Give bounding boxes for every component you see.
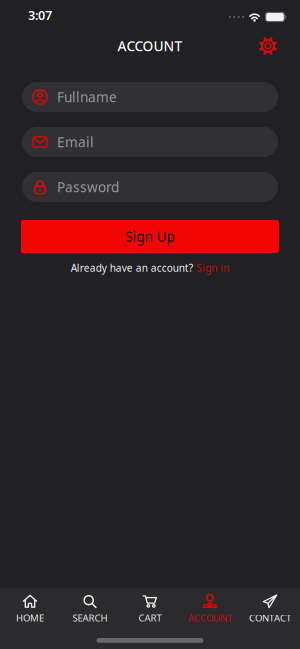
staticText: CONTACT — [249, 611, 291, 624]
button[interactable]: CART — [120, 594, 180, 624]
staticText: Email — [57, 133, 94, 151]
staticText: Password — [57, 178, 119, 196]
staticText: HOME — [16, 611, 44, 624]
staticText: Sign in — [196, 261, 229, 274]
staticText: ACCOUNT — [117, 37, 182, 55]
button[interactable]: ACCOUNT — [180, 594, 240, 624]
button[interactable]: HOME — [0, 594, 60, 624]
button[interactable]: Sign in — [196, 261, 229, 274]
staticText: SEARCH — [72, 611, 107, 624]
staticText: 3:07 — [28, 7, 52, 23]
staticText: Already have an account? — [71, 261, 193, 274]
staticText: Sign Up — [125, 227, 174, 246]
staticText: Fullname — [57, 88, 117, 106]
staticText: CART — [138, 611, 161, 624]
button[interactable]: Sign Up — [21, 220, 279, 253]
button[interactable]: Settings — [253, 31, 282, 60]
button[interactable]: SEARCH — [60, 594, 120, 624]
staticText: ACCOUNT — [188, 611, 232, 624]
button[interactable]: CONTACT — [240, 594, 300, 624]
